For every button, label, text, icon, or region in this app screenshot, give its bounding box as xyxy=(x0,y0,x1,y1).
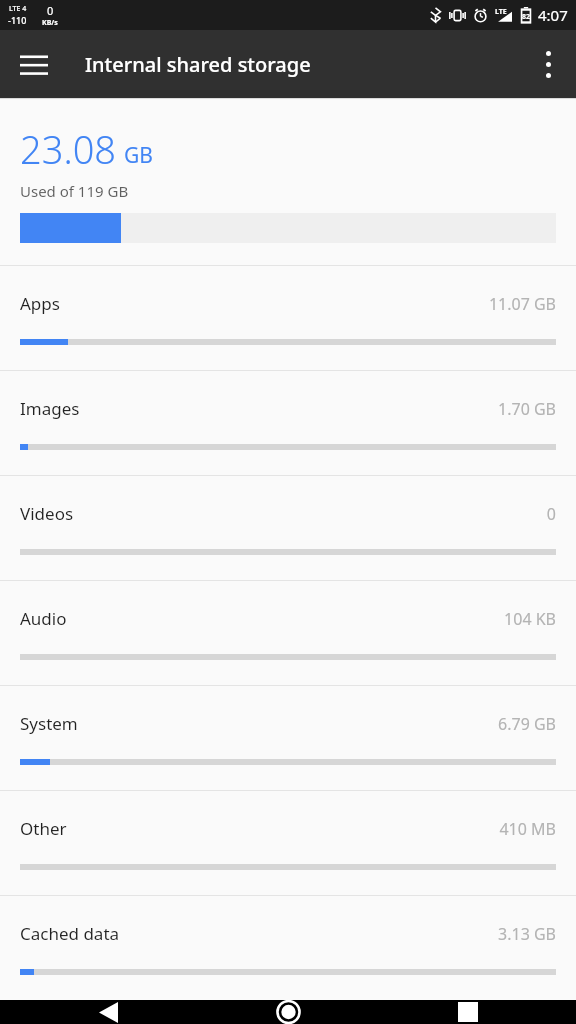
staticText: 104 KB xyxy=(504,608,556,630)
button[interactable]: Home xyxy=(260,1000,316,1024)
staticText: Apps xyxy=(20,292,60,315)
staticText: Internal shared storage xyxy=(85,51,311,78)
button[interactable]: Open navigation drawer xyxy=(8,38,60,90)
button[interactable]: System xyxy=(0,686,576,790)
staticText: 6.79 GB xyxy=(498,713,556,735)
staticText: Used of 119 GB xyxy=(20,181,129,201)
staticText: 0 xyxy=(546,503,556,525)
staticText: KB/s xyxy=(42,18,58,28)
staticText: Videos xyxy=(20,502,74,525)
staticText: 23.08 xyxy=(20,123,117,175)
staticText: 3.13 GB xyxy=(498,923,556,945)
staticText: 1.70 GB xyxy=(498,398,556,420)
button[interactable]: Audio xyxy=(0,581,576,685)
staticText: -110 xyxy=(8,14,27,26)
staticText: GB xyxy=(124,141,153,170)
button[interactable]: Images xyxy=(0,371,576,475)
button[interactable]: Apps xyxy=(0,266,576,370)
staticText: 82 xyxy=(522,12,531,22)
staticText: Cached data xyxy=(20,922,120,945)
staticText: Other xyxy=(20,817,67,840)
staticText: 410 MB xyxy=(499,818,556,840)
button[interactable]: Other xyxy=(0,791,576,895)
staticText: System xyxy=(20,712,78,735)
button[interactable]: Back xyxy=(80,1000,136,1024)
staticText: Audio xyxy=(20,607,67,630)
staticText: 0 xyxy=(47,3,54,18)
button[interactable]: Recent apps xyxy=(440,1000,496,1024)
button[interactable]: Videos xyxy=(0,476,576,580)
staticText: LTE xyxy=(495,7,507,17)
button[interactable]: More options xyxy=(522,38,574,90)
staticText: 4:07 xyxy=(538,5,568,25)
button[interactable]: Cached data xyxy=(0,896,576,1000)
staticText: LTE 4 xyxy=(9,4,27,14)
staticText: Images xyxy=(20,397,80,420)
staticText: 11.07 GB xyxy=(488,293,556,315)
